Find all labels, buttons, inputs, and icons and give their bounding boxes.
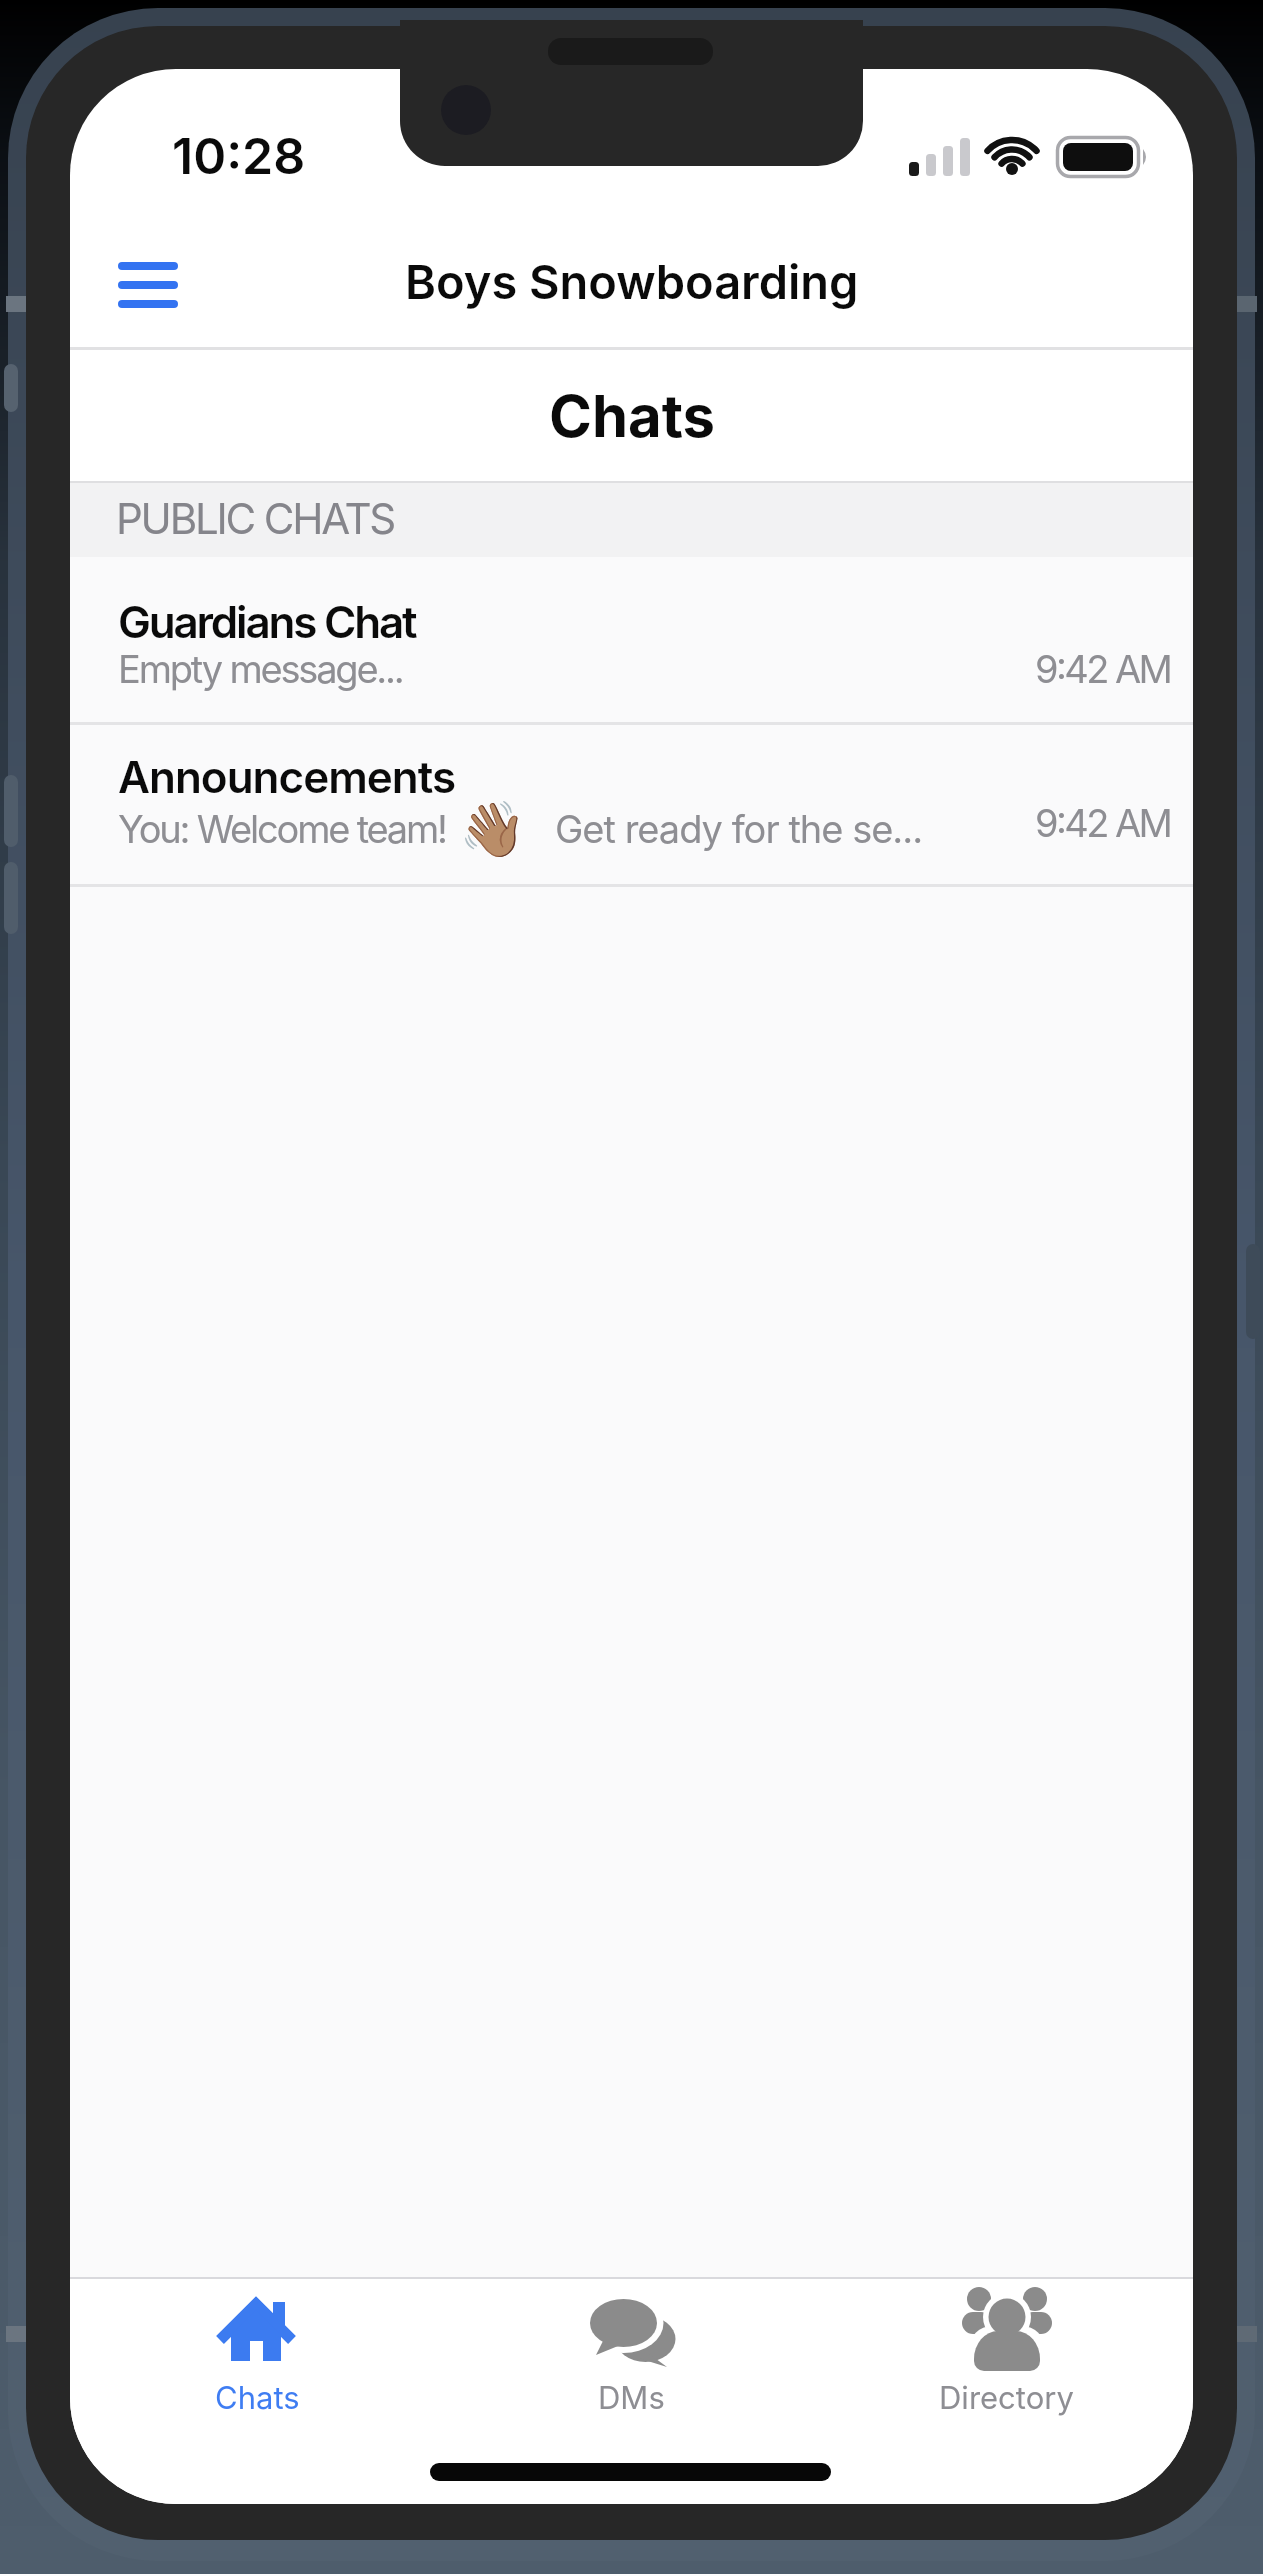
staticText: 👋🏽: [459, 798, 527, 860]
staticText: Empty message...: [118, 646, 403, 692]
staticText: Get ready for the se...: [555, 806, 923, 852]
staticText: 9:42 AM: [1035, 646, 1171, 692]
staticText: Chats: [215, 2379, 300, 2417]
staticText: You: Welcome team!: [118, 806, 446, 852]
staticText: 9:42 AM: [1035, 800, 1171, 846]
button[interactable]: [131, 2284, 383, 2424]
staticText: Directory: [939, 2379, 1074, 2417]
button[interactable]: Announcements: [70, 725, 1193, 884]
staticText: Announcements: [118, 750, 456, 803]
button[interactable]: [505, 2284, 757, 2424]
button[interactable]: [110, 254, 186, 316]
staticText: PUBLIC CHATS: [116, 493, 395, 544]
button[interactable]: Guardians Chat: [70, 557, 1193, 722]
button[interactable]: [880, 2284, 1132, 2424]
staticText: Guardians Chat: [118, 595, 416, 648]
staticText: DMs: [598, 2379, 665, 2417]
staticText: Chats: [549, 381, 715, 451]
staticText: Boys Snowboarding: [405, 253, 859, 310]
staticText: 10:28: [172, 126, 306, 186]
